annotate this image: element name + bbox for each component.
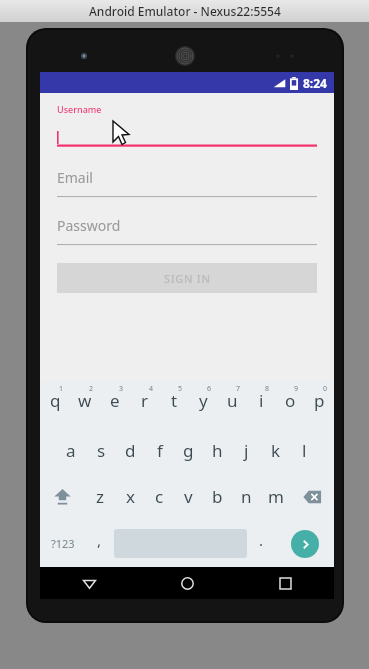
button[interactable]: 1 [40,381,70,427]
staticText: s [97,439,106,462]
staticText: t [171,389,178,412]
staticText: y [199,389,208,412]
staticText: ?123 [51,536,75,551]
button[interactable]: Recents [236,567,334,599]
staticText: Android Emulator - Nexus22:5554 [89,3,281,19]
button[interactable]: Backspace [290,473,334,520]
staticText: q [50,389,61,412]
button[interactable]: ?123 [40,520,85,567]
staticText: a [66,439,76,462]
button[interactable]: d [116,427,145,473]
button[interactable]: c [145,473,174,520]
button[interactable]: Username [57,103,317,149]
button[interactable]: s [86,427,116,473]
staticText: d [125,439,136,462]
button[interactable]: z [85,473,115,520]
staticText: SIGN IN [164,271,211,286]
button[interactable]: Shift [40,473,85,520]
staticText: 1 [59,384,64,394]
staticText: 6 [207,384,212,394]
staticText: z [96,485,104,508]
staticText: 7 [236,384,241,394]
button[interactable]: SIGN IN [57,263,317,293]
button[interactable]: 2 [70,381,100,427]
staticText: v [184,485,193,508]
staticText: 3 [119,384,124,394]
staticText: 2 [89,384,94,394]
button[interactable]: f [145,427,174,473]
staticText: w [78,389,92,412]
staticText: e [110,389,120,412]
button[interactable]: 6 [189,381,218,427]
staticText: x [126,485,135,508]
staticText: f [157,439,163,462]
staticText: k [271,439,281,462]
button[interactable]: 7 [218,381,247,427]
staticText: l [302,439,307,462]
staticText: j [244,439,249,462]
button[interactable]: l [290,427,319,473]
staticText: b [212,485,223,508]
button[interactable]: k [261,427,290,473]
staticText: m [268,485,284,508]
button[interactable]: g [174,427,203,473]
button[interactable]: x [115,473,145,520]
button[interactable]: 5 [160,381,189,427]
button[interactable]: Enter [276,520,334,567]
button[interactable]: v [174,473,203,520]
staticText: 4 [149,384,154,394]
staticText: i [259,389,264,412]
staticText: 8 [265,384,270,394]
staticText: n [241,485,252,508]
staticText: Password [57,216,121,235]
button[interactable]: 9 [276,381,305,427]
button[interactable]: 0 [305,381,334,427]
staticText: , [97,530,102,550]
button[interactable]: h [203,427,232,473]
staticText: 9 [294,384,299,394]
button[interactable]: j [232,427,261,473]
staticText: u [227,389,238,412]
button[interactable]: . [247,520,276,567]
button[interactable]: Home [138,567,236,599]
button[interactable]: Email [57,163,317,197]
button[interactable]: a [56,427,86,473]
staticText: h [212,439,223,462]
staticText: p [314,389,325,412]
button[interactable]: m [261,473,290,520]
staticText: g [183,439,194,462]
staticText: Username [57,103,102,115]
button[interactable]: 3 [100,381,130,427]
button[interactable]: , [85,520,114,567]
button[interactable]: Password [57,211,317,245]
button[interactable]: b [203,473,232,520]
staticText: 5 [178,384,183,394]
staticText: Email [57,168,93,187]
button[interactable]: Back [40,567,138,599]
button[interactable]: 4 [130,381,160,427]
staticText: . [259,530,264,550]
button[interactable]: n [232,473,261,520]
staticText: 8:24 [303,75,327,91]
staticText: o [285,389,296,412]
button[interactable]: 8 [247,381,276,427]
staticText: c [155,485,164,508]
staticText: 0 [323,384,328,394]
staticText: r [141,389,149,412]
